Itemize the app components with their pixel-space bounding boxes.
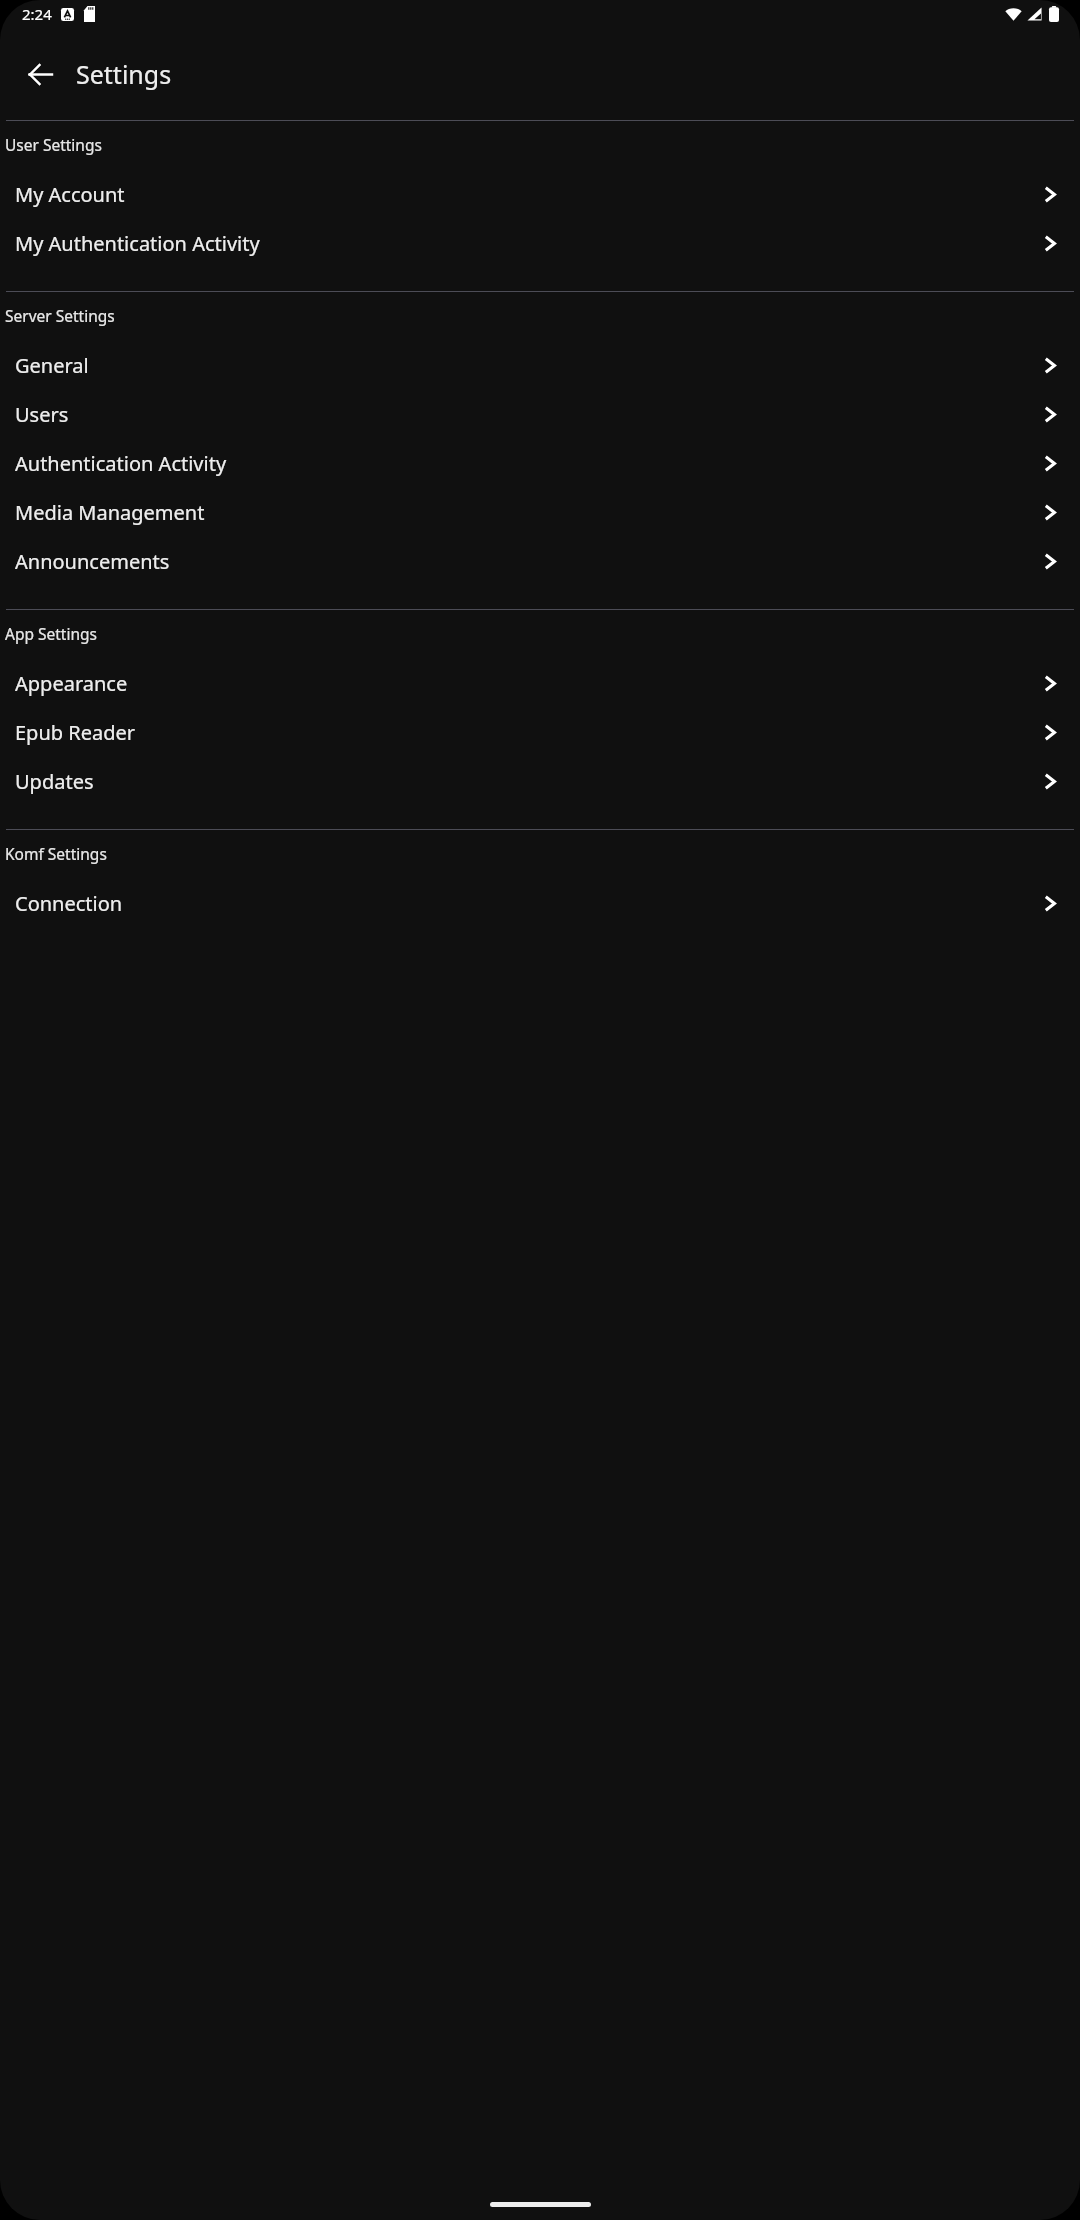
staticText: General [15,352,1043,379]
button[interactable]: Updates [0,757,1080,806]
staticText: 2:24 [22,4,52,24]
button[interactable]: Epub Reader [0,708,1080,757]
button[interactable]: Back [12,46,68,102]
button[interactable]: General [0,341,1080,390]
button[interactable]: Media Management [0,488,1080,537]
staticText: My Authentication Activity [15,230,1043,257]
button[interactable]: My Account [0,170,1080,219]
staticText: Komf Settings [5,843,107,864]
button[interactable]: Announcements [0,537,1080,586]
staticText: App Settings [5,623,97,644]
staticText: Updates [15,768,1043,795]
staticText: Settings [76,57,172,91]
staticText: Appearance [15,670,1043,697]
button[interactable]: Connection [0,879,1080,928]
staticText: Users [15,401,1043,428]
staticText: Announcements [15,548,1043,575]
button[interactable]: Appearance [0,659,1080,708]
staticText: Epub Reader [15,719,1043,746]
staticText: Server Settings [5,305,115,326]
button[interactable]: Authentication Activity [0,439,1080,488]
staticText: Connection [15,890,1043,917]
button[interactable]: Users [0,390,1080,439]
staticText: User Settings [5,134,102,155]
staticText: My Account [15,181,1043,208]
staticText: Authentication Activity [15,450,1043,477]
staticText: Media Management [15,499,1043,526]
button[interactable]: My Authentication Activity [0,219,1080,268]
